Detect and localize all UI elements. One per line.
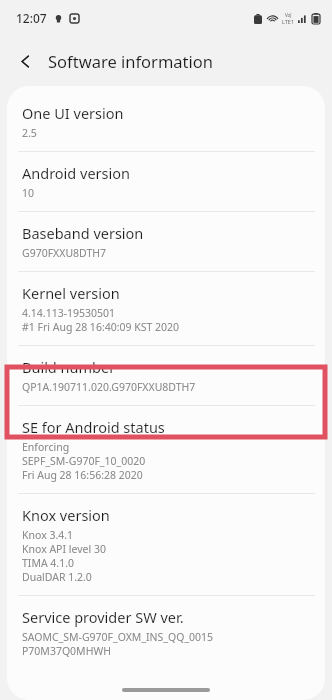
staticText: 4.14.113-19530501 <box>22 306 116 320</box>
staticText: Enforcing <box>22 440 70 454</box>
staticText: 10 <box>22 186 35 200</box>
button[interactable]: Service provider SW ver. <box>7 596 325 669</box>
staticText: Service provider SW ver. <box>22 607 184 627</box>
staticText: Knox 3.4.1 <box>22 528 74 542</box>
staticText: One UI version <box>22 103 124 123</box>
staticText: Kernel version <box>22 283 120 303</box>
button[interactable]: Baseband version <box>7 212 325 271</box>
button[interactable]: Android version <box>7 152 325 211</box>
button[interactable]: Kernel version <box>7 272 325 345</box>
staticText: Fri Aug 28 16:56:28 2020 <box>22 468 143 482</box>
staticText: Knox version <box>22 505 110 525</box>
staticText: Baseband version <box>22 223 144 243</box>
staticText: #1 Fri Aug 28 16:40:09 KST 2020 <box>22 320 180 334</box>
staticText: LTE1 <box>282 18 295 25</box>
button[interactable]: Knox version <box>7 494 325 595</box>
staticText: Software information <box>48 50 213 72</box>
staticText: Knox API level 30 <box>22 542 106 556</box>
staticText: G970FXXU8DTH7 <box>22 246 107 260</box>
staticText: SE for Android status <box>22 417 165 437</box>
staticText: Build number <box>22 357 116 377</box>
button[interactable]: Back <box>8 44 42 78</box>
staticText: DualDAR 1.2.0 <box>22 570 92 584</box>
staticText: 2.5 <box>22 126 37 140</box>
staticText: SAOMC_SM-G970F_OXM_INS_QQ_0015 <box>22 630 214 644</box>
staticText: SEPF_SM-G970F_10_0020 <box>22 454 146 468</box>
staticText: 12:07 <box>16 10 47 26</box>
staticText: TIMA 4.1.0 <box>22 556 75 570</box>
button[interactable]: SE for Android status <box>7 406 325 493</box>
button[interactable]: One UI version <box>7 92 325 151</box>
staticText: QP1A.190711.020.G970FXXU8DTH7 <box>22 380 196 394</box>
staticText: VoJ <box>285 12 292 18</box>
staticText: Android version <box>22 163 130 183</box>
button[interactable]: Build number <box>7 346 325 405</box>
staticText: P70M37Q0MHWH <box>22 644 111 658</box>
